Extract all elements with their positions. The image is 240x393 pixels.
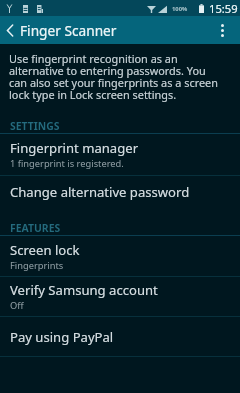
staticText: Fingerprints [10,259,64,272]
staticText: 100% [172,5,188,13]
button[interactable]: Screen lock [0,236,240,276]
staticText: Use fingerprint recognition as an altern… [9,51,222,102]
button[interactable]: Change alternative password [0,176,240,207]
staticText: 1 fingerprint is registered. [10,157,124,170]
staticText: Screen lock [10,241,80,259]
staticText: Verify Samsung account [10,281,158,299]
staticText: Finger Scanner [20,21,117,40]
staticText: Fingerprint manager [10,139,139,157]
staticText: Pay using PayPal [10,328,114,346]
button[interactable]: Verify Samsung account [0,277,240,316]
button[interactable]: Navigate up [0,16,123,44]
staticText: 15:59 [209,1,238,16]
staticText: Off [10,299,24,312]
staticText: FEATURES [10,221,240,235]
staticText: Change alternative password [10,183,190,201]
staticText: SETTINGS [10,119,240,133]
button[interactable]: More options [214,16,231,44]
button[interactable]: Pay using PayPal [0,317,240,356]
other: Navigate up [7,25,13,36]
button[interactable]: Fingerprint manager [0,134,240,175]
